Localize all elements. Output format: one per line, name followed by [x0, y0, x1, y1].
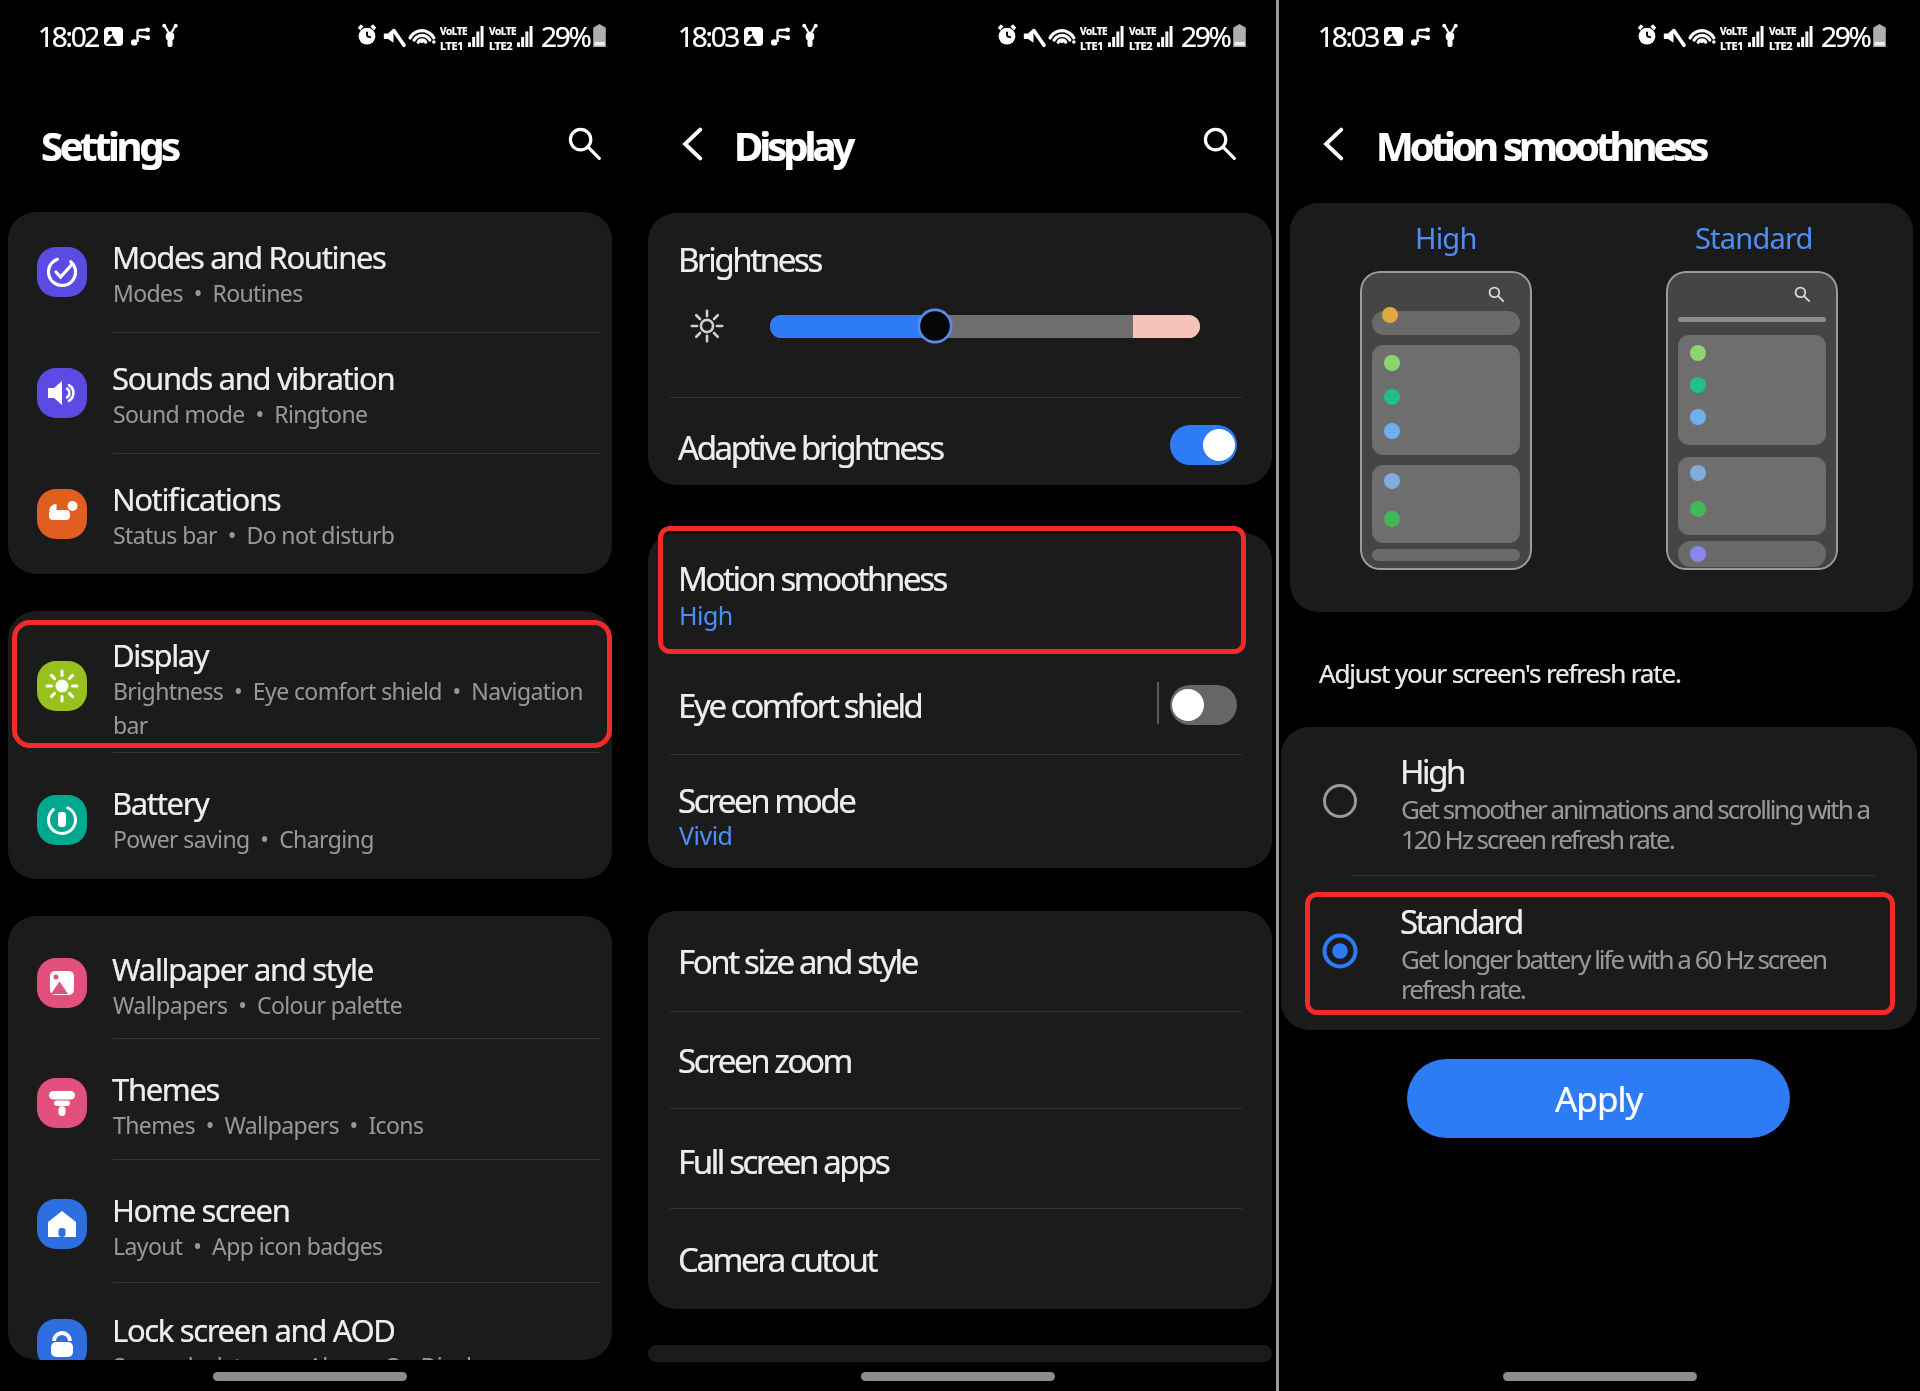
button[interactable] [648, 660, 1272, 750]
staticText: Modes and Routines [112, 236, 386, 278]
staticText: VoLTE [489, 24, 517, 38]
staticText: Brightness [678, 237, 821, 282]
button[interactable] [8, 212, 612, 574]
staticText: LTE2 [1129, 38, 1153, 53]
staticText: Screen zoom [678, 1038, 852, 1083]
staticText: Status bar • Do not disturb [113, 519, 395, 550]
staticText: 18:03 [1318, 17, 1379, 55]
button[interactable] [648, 533, 1272, 653]
staticText: 29% [541, 17, 590, 55]
staticText: Home screen [112, 1189, 290, 1231]
staticText: Font size and style [678, 939, 917, 984]
staticText: High [1400, 749, 1465, 794]
staticText: 29% [1181, 17, 1230, 55]
button[interactable] [648, 1213, 1272, 1311]
button[interactable] [1281, 878, 1917, 1030]
staticText: Standard [1400, 899, 1522, 944]
staticText: Get longer battery life with a 60 Hz scr… [1401, 941, 1861, 1006]
staticText: Modes • Routines [113, 277, 303, 308]
staticText: Wallpapers • Colour palette [113, 989, 403, 1020]
button[interactable]: Apply [1407, 1059, 1790, 1138]
staticText: Get smoother animations and scrolling wi… [1401, 791, 1879, 856]
button[interactable] [648, 915, 1272, 1013]
staticText: Adjust your screen's refresh rate. [1319, 655, 1681, 690]
staticText: Display [112, 634, 209, 676]
button[interactable] [8, 611, 612, 879]
button[interactable]: Brightness slider [760, 300, 1210, 352]
staticText: Themes • Wallpapers • Icons [113, 1109, 424, 1140]
staticText: Lock screen and AOD [112, 1309, 395, 1351]
staticText: VoLTE [440, 24, 468, 38]
staticText: Brightness • Eye comfort shield • Naviga… [113, 675, 605, 740]
button[interactable] [1281, 727, 1917, 875]
button[interactable]: Search [1194, 118, 1244, 168]
staticText: LTE1 [1080, 38, 1104, 53]
button[interactable]: Back [665, 116, 721, 172]
staticText: Settings [41, 118, 178, 172]
staticText: 29% [1821, 17, 1870, 55]
button[interactable]: Toggle on [1170, 425, 1237, 465]
staticText: High [679, 598, 733, 632]
staticText: Battery [112, 782, 209, 824]
staticText: 18:02 [38, 17, 99, 55]
staticText: Eye comfort shield [678, 683, 922, 728]
staticText: Motion smoothness [678, 556, 946, 601]
button[interactable] [648, 1115, 1272, 1213]
staticText: Display [734, 118, 852, 172]
staticText: Motion smoothness [1376, 118, 1706, 172]
staticText: Screen lock type • Always On Display [113, 1350, 495, 1360]
staticText: VoLTE [1769, 24, 1797, 38]
staticText: Adaptive brightness [678, 425, 943, 470]
staticText: VoLTE [1129, 24, 1157, 38]
button[interactable] [8, 916, 612, 1360]
staticText: Wallpaper and style [112, 948, 373, 990]
button[interactable]: Toggle off [1170, 685, 1237, 725]
staticText: Vivid [679, 818, 733, 852]
staticText: Notifications [112, 478, 281, 520]
staticText: Standard [1695, 218, 1813, 257]
staticText: Screen mode [678, 778, 855, 823]
staticText: 18:03 [678, 17, 739, 55]
staticText: LTE2 [489, 38, 513, 53]
staticText: LTE1 [1720, 38, 1744, 53]
staticText: Themes [112, 1068, 220, 1110]
staticText: VoLTE [1080, 24, 1108, 38]
staticText: LTE2 [1769, 38, 1793, 53]
staticText: Power saving • Charging [113, 823, 374, 854]
staticText: Full screen apps [678, 1139, 889, 1184]
button[interactable]: Back [1306, 116, 1362, 172]
staticText: Sounds and vibration [112, 357, 395, 399]
staticText: LTE1 [440, 38, 464, 53]
button[interactable] [648, 400, 1272, 485]
button[interactable] [648, 756, 1272, 866]
button[interactable]: Search [559, 118, 609, 168]
button[interactable] [648, 1014, 1272, 1112]
staticText: High [1415, 218, 1477, 257]
staticText: Layout • App icon badges [113, 1230, 383, 1261]
staticText: VoLTE [1720, 24, 1748, 38]
staticText: Camera cutout [678, 1237, 877, 1282]
staticText: Apply [1555, 1075, 1643, 1123]
staticText: Sound mode • Ringtone [113, 398, 368, 429]
